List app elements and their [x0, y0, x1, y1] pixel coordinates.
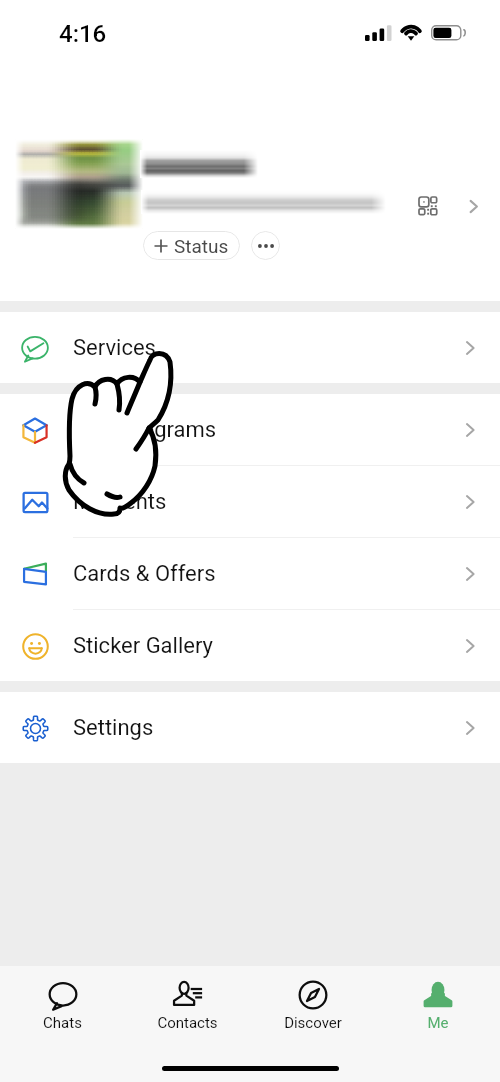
- staticText: Mini Programs: [73, 417, 217, 443]
- staticText: Moments: [73, 489, 167, 515]
- button[interactable]: Me: [375, 966, 500, 1042]
- staticText: Settings: [73, 715, 154, 741]
- button[interactable]: Mini Programs: [0, 394, 500, 465]
- button[interactable]: Sticker Gallery: [0, 610, 500, 681]
- button[interactable]: Cards & Offers: [0, 538, 500, 609]
- staticText: Cards & Offers: [73, 561, 216, 587]
- button[interactable]: My QR code: [410, 188, 446, 224]
- button[interactable]: More options: [251, 231, 280, 260]
- button[interactable]: Profile details: [455, 188, 491, 224]
- staticText: Me: [427, 1014, 449, 1032]
- staticText: Status: [174, 235, 229, 257]
- button[interactable]: Services: [0, 312, 500, 383]
- button[interactable]: Settings: [0, 692, 500, 763]
- button[interactable]: Chats: [0, 966, 125, 1042]
- staticText: Discover: [284, 1014, 342, 1032]
- staticText: Services: [73, 335, 156, 361]
- button[interactable]: Discover: [250, 966, 375, 1042]
- button[interactable]: Status: [143, 231, 240, 260]
- staticText: Chats: [43, 1014, 82, 1032]
- button[interactable]: Moments: [0, 466, 500, 537]
- staticText: Contacts: [157, 1014, 218, 1032]
- button[interactable]: Contacts: [125, 966, 250, 1042]
- staticText: Sticker Gallery: [73, 633, 214, 659]
- staticText: 4:16: [59, 20, 107, 48]
